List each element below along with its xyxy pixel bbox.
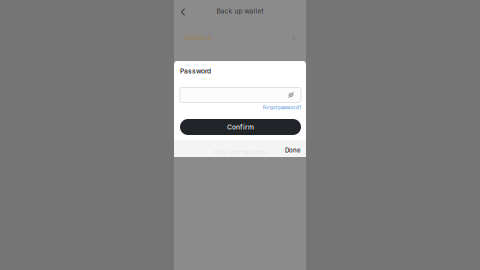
button[interactable]: Done <box>277 146 301 155</box>
staticText: Confirm <box>227 123 254 131</box>
button[interactable]: Forgot password? <box>180 104 301 112</box>
staticText: Wallet A <box>185 34 211 42</box>
staticText: Done <box>285 147 301 154</box>
staticText: Know your password <box>213 149 266 155</box>
button[interactable]: Wallet A <box>174 22 306 54</box>
button[interactable]: Show password <box>286 87 295 102</box>
button[interactable]: Confirm <box>180 119 301 135</box>
button[interactable]: Back <box>174 0 192 22</box>
staticText: Back up wallet <box>216 7 263 15</box>
staticText: Password <box>180 67 211 75</box>
staticText: Forgot password? <box>263 105 301 110</box>
